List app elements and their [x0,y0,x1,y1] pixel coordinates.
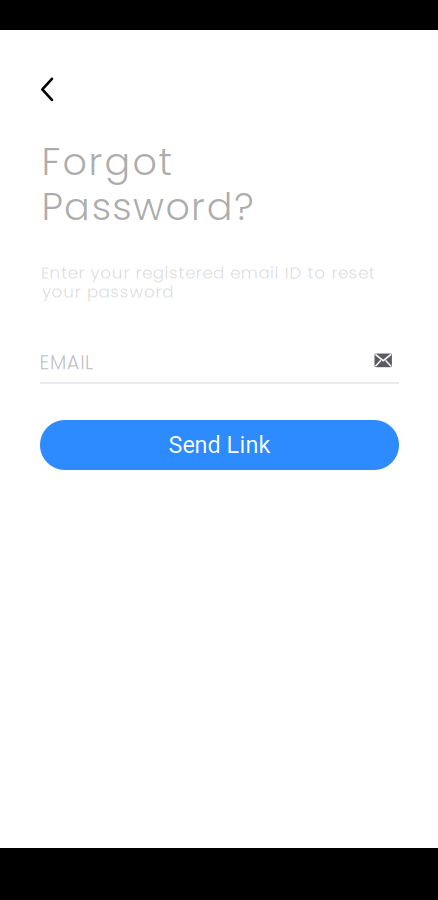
staticText: Enter your registered email ID to reset [41,261,375,284]
staticText: Send Link [168,431,270,459]
button[interactable]: Back [23,62,79,118]
staticText: EMAIL [39,349,93,376]
button[interactable]: Email [40,349,399,399]
button[interactable]: Send Link [40,420,399,470]
staticText: Password? [41,180,253,233]
staticText: Forgot [41,135,172,188]
staticText: your password [42,280,173,303]
